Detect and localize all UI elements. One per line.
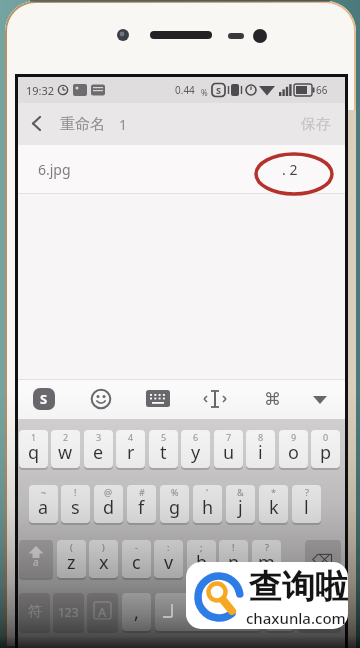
button[interactable]: 3 — [84, 430, 113, 468]
staticText: t — [160, 440, 167, 465]
button[interactable]: ? — [292, 485, 321, 523]
button[interactable]: 0 — [311, 430, 340, 468]
staticText: x — [99, 550, 109, 575]
button[interactable]: , — [122, 593, 151, 631]
button[interactable] — [186, 562, 348, 629]
staticText: : — [167, 541, 170, 553]
staticText: v — [164, 550, 174, 575]
button[interactable]: ) — [89, 540, 118, 578]
button[interactable]: 6.jpg — [18, 145, 345, 194]
staticText: s — [71, 495, 80, 520]
button[interactable]: 8 — [246, 430, 275, 468]
staticText: m — [258, 550, 275, 575]
button[interactable]: & — [226, 485, 255, 523]
staticText: S — [40, 390, 48, 408]
button[interactable]: ? — [252, 540, 281, 578]
button[interactable] — [205, 389, 225, 409]
staticText: S — [216, 84, 221, 96]
staticText: ! — [232, 541, 235, 553]
button[interactable]: ! — [61, 485, 90, 523]
button[interactable]: S — [33, 388, 55, 410]
staticText: - — [135, 541, 138, 553]
button[interactable]: 5 — [149, 430, 178, 468]
staticText: p — [320, 440, 332, 465]
button[interactable] — [298, 593, 341, 631]
staticText: chaxunla.com — [246, 608, 346, 626]
button[interactable]: # — [127, 485, 156, 523]
staticText: ( — [70, 541, 73, 553]
button[interactable]: . — [265, 593, 294, 631]
staticText: z — [67, 550, 76, 575]
staticText: a — [38, 495, 49, 520]
button[interactable] — [148, 389, 168, 409]
staticText: e — [93, 440, 104, 465]
staticText: 2 — [63, 431, 69, 443]
staticText: @ — [104, 486, 113, 498]
button[interactable]: 123 — [53, 593, 84, 631]
button[interactable]: ⌫ — [305, 540, 341, 578]
button[interactable] — [18, 103, 58, 145]
staticText: q — [28, 440, 40, 465]
button[interactable]: ! — [219, 540, 248, 578]
staticText: o — [288, 440, 299, 465]
button[interactable]: % — [160, 485, 189, 523]
staticText: y — [191, 440, 201, 465]
staticText: 符 — [28, 603, 42, 621]
staticText: . 2 — [282, 160, 298, 179]
button[interactable]: @ — [94, 485, 123, 523]
staticText: l — [304, 495, 309, 520]
staticText: 1 — [119, 115, 128, 134]
button[interactable]: ~ — [29, 485, 58, 523]
staticText: j — [238, 495, 243, 520]
staticText: 保存 — [301, 115, 331, 134]
button[interactable]: 符 — [19, 593, 50, 631]
button[interactable]: ( — [57, 540, 86, 578]
staticText: c — [132, 550, 141, 575]
staticText: 9 — [291, 431, 297, 443]
button[interactable] — [310, 389, 330, 409]
staticText: 19:32 — [26, 83, 55, 98]
staticText: 5 — [161, 431, 167, 443]
staticText: . — [277, 600, 282, 625]
staticText: 4 — [128, 431, 134, 443]
staticText: d — [103, 495, 115, 520]
button[interactable] — [19, 540, 53, 578]
staticText: 1 — [31, 431, 37, 443]
button[interactable] — [155, 593, 261, 631]
button[interactable]: 7 — [214, 430, 243, 468]
staticText: 查询啦 — [249, 566, 348, 608]
button[interactable]: - — [122, 540, 151, 578]
button[interactable]: ; — [187, 540, 216, 578]
button[interactable]: ⌘ — [262, 379, 282, 419]
button[interactable]: : — [154, 540, 183, 578]
staticText: 0 — [323, 431, 329, 443]
staticText: i — [258, 440, 263, 465]
staticText: # — [139, 486, 145, 498]
staticText: w — [58, 440, 73, 465]
button[interactable]: 9 — [279, 430, 308, 468]
staticText: 重命名 — [60, 115, 105, 134]
button[interactable]: 1 — [19, 430, 48, 468]
button[interactable]: * — [259, 485, 288, 523]
staticText: 6.jpg — [38, 160, 71, 179]
staticText: ' — [206, 486, 209, 498]
button[interactable]: ' — [193, 485, 222, 523]
button[interactable]: 6 — [181, 430, 210, 468]
staticText: 7 — [226, 431, 232, 443]
staticText: * — [271, 486, 276, 498]
button[interactable]: 2 — [51, 430, 80, 468]
staticText: 6 — [193, 431, 199, 443]
staticText: ~ — [41, 486, 47, 498]
button[interactable] — [91, 389, 111, 409]
staticText: ; — [200, 541, 203, 553]
button[interactable]: 保存 — [296, 103, 336, 145]
button[interactable]: A — [87, 593, 118, 631]
staticText: b — [196, 550, 208, 575]
staticText: 0.44 — [175, 83, 195, 97]
staticText: a — [33, 555, 39, 569]
staticText: 123 — [58, 604, 79, 620]
button[interactable]: 4 — [116, 430, 145, 468]
staticText: k — [269, 495, 279, 520]
staticText: ! — [74, 486, 77, 498]
staticText: r — [127, 440, 135, 465]
